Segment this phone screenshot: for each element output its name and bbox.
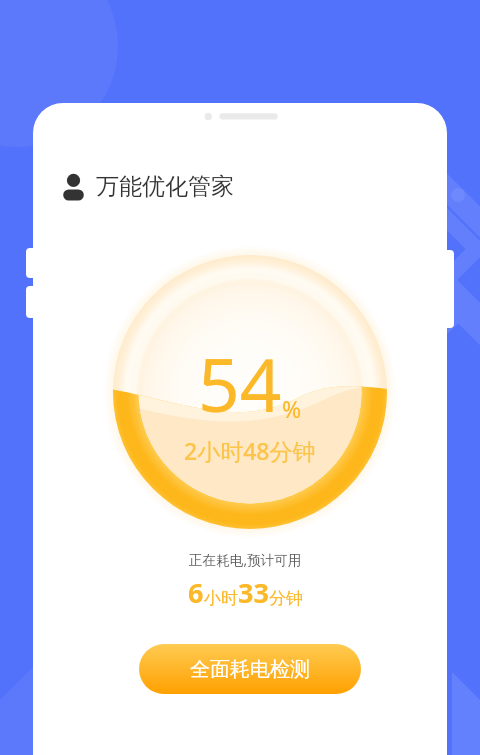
button[interactable]: 万能优化管家	[63, 170, 234, 202]
staticText: 2小时48分钟	[184, 435, 316, 466]
button[interactable]: 全面耗电检测	[139, 644, 361, 694]
staticText: %	[282, 393, 302, 424]
staticText: 54	[198, 334, 282, 433]
staticText: 全面耗电检测	[190, 657, 310, 682]
staticText: 33	[238, 574, 269, 611]
staticText: 正在耗电,预计可用	[189, 550, 302, 569]
staticText: 小时	[204, 588, 238, 609]
staticText: 万能优化管家	[96, 172, 234, 201]
staticText: 分钟	[269, 588, 303, 609]
staticText: 6	[188, 574, 204, 611]
